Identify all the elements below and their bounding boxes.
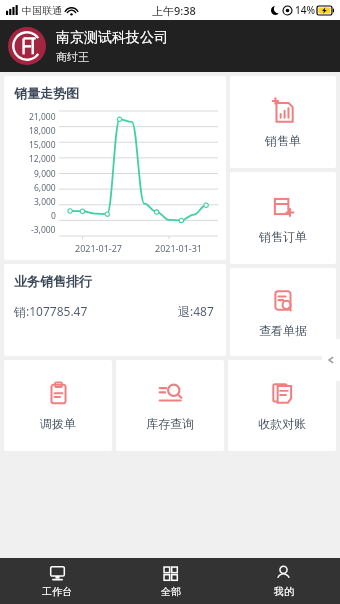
button[interactable]: 业务销售排行 [4, 264, 226, 356]
button[interactable]: 销量走势图 [4, 76, 226, 260]
staticText: 2021-01-31 [155, 242, 202, 254]
button[interactable]: 销售单 [230, 76, 336, 168]
button[interactable]: 全部 [114, 558, 227, 604]
staticText: 15,000 [29, 139, 56, 151]
staticText: 退:487 [178, 303, 214, 319]
button[interactable]: 工作台 [0, 558, 114, 604]
staticText: 销量走势图 [14, 85, 79, 101]
staticText: 0 [51, 210, 56, 222]
button[interactable]: 我的 [227, 558, 340, 604]
staticText: 工作台 [42, 585, 72, 598]
staticText: 收款对账 [258, 416, 306, 431]
button[interactable]: 调拨单 [4, 360, 112, 451]
staticText: -3,000 [31, 224, 56, 236]
staticText: 2021-01-27 [75, 242, 122, 254]
staticText: 9,000 [34, 168, 56, 180]
staticText: 销售订单 [259, 229, 307, 244]
button[interactable]: 查看单据 [230, 268, 336, 356]
staticText: 业务销售排行 [14, 273, 92, 289]
staticText: 全部 [161, 585, 181, 598]
staticText: 18,000 [29, 125, 56, 137]
staticText: 6,000 [34, 182, 56, 194]
staticText: 中国联通 [22, 4, 62, 17]
staticText: 3,000 [34, 196, 56, 208]
staticText: 我的 [274, 585, 294, 598]
staticText: 商纣王 [56, 50, 89, 64]
staticText: 销售单 [265, 133, 301, 148]
staticText: 销:107785.47 [14, 303, 88, 319]
staticText: 南京测试科技公司 [56, 29, 168, 47]
staticText: 14% [295, 3, 315, 17]
staticText: 21,000 [29, 111, 56, 123]
button[interactable]: 展开侧边栏 [322, 339, 340, 381]
staticText: 调拨单 [40, 416, 76, 431]
staticText: 12,000 [29, 153, 56, 165]
button[interactable]: 销售订单 [230, 172, 336, 264]
staticText: 上午9:38 [152, 3, 196, 18]
button[interactable]: 库存查询 [116, 360, 224, 451]
staticText: 库存查询 [146, 416, 194, 431]
staticText: 查看单据 [259, 323, 307, 338]
button[interactable]: 收款对账 [228, 360, 336, 451]
